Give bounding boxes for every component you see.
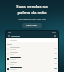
button[interactable] xyxy=(7,66,57,71)
button[interactable] xyxy=(7,39,57,42)
staticText: Suas vendas na xyxy=(16,4,48,10)
button[interactable] xyxy=(7,51,57,56)
button[interactable]: Saiba mais xyxy=(22,23,42,28)
button[interactable] xyxy=(7,56,57,61)
staticText: Acompanhe tudo pelo app xyxy=(18,18,46,21)
button[interactable] xyxy=(7,61,57,66)
staticText: Saiba mais xyxy=(26,24,38,27)
staticText: palma da mão xyxy=(17,10,47,16)
button[interactable]: Menu xyxy=(54,35,56,37)
button[interactable]: Perfil xyxy=(8,35,56,37)
button[interactable] xyxy=(7,46,57,51)
